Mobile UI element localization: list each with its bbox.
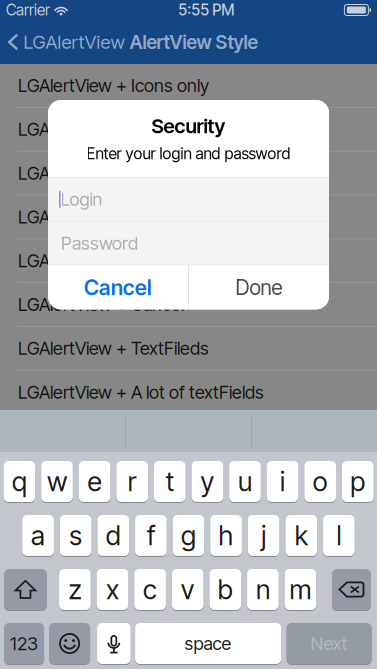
- button[interactable]: 123: [4, 622, 44, 664]
- button[interactable]: s: [60, 514, 91, 556]
- staticText: 123: [10, 632, 38, 655]
- staticText: LGAlertView + A lot of textFields: [18, 381, 264, 403]
- staticText: 5:55 PM: [178, 1, 234, 19]
- button[interactable]: t: [154, 460, 186, 502]
- button[interactable]: n: [247, 568, 279, 610]
- staticText: t: [166, 465, 174, 498]
- staticText: u: [238, 465, 252, 498]
- button[interactable]: Delete: [332, 568, 371, 610]
- staticText: n: [256, 573, 270, 606]
- staticText: Cancel: [84, 274, 152, 300]
- button[interactable]: a: [22, 514, 54, 556]
- staticText: k: [295, 519, 308, 552]
- button[interactable]: u: [229, 460, 261, 502]
- staticText: g: [181, 519, 196, 552]
- staticText: Password: [61, 232, 138, 254]
- button[interactable]: r: [116, 460, 148, 502]
- staticText: Done: [235, 275, 282, 300]
- staticText: h: [219, 519, 234, 552]
- button[interactable]: z: [59, 568, 91, 610]
- staticText: y: [200, 465, 214, 498]
- staticText: Security: [151, 114, 225, 138]
- button[interactable]: d: [97, 514, 129, 556]
- staticText: LGAlertView + Icons only: [18, 75, 209, 96]
- button[interactable]: Next: [287, 622, 372, 664]
- staticText: LGAlertView + Buttons: [18, 250, 193, 272]
- staticText: LGAlertView + Message: [18, 206, 203, 228]
- staticText: o: [313, 465, 328, 498]
- staticText: LGAlertView + Title + Message: [18, 162, 255, 184]
- staticText: b: [218, 573, 233, 606]
- button[interactable]: Emoji keyboard: [49, 622, 90, 664]
- button[interactable]: LGAlertView: [0, 20, 132, 64]
- staticText: s: [69, 519, 82, 552]
- button[interactable]: y: [192, 460, 223, 502]
- button[interactable]: LGAlertView + TextFileds: [0, 327, 377, 371]
- button[interactable]: e: [79, 460, 110, 502]
- staticText: w: [47, 465, 67, 498]
- staticText: LGAlertView + Title: [18, 118, 164, 140]
- button[interactable]: j: [248, 514, 279, 556]
- button[interactable]: k: [285, 514, 317, 556]
- button[interactable]: o: [304, 460, 336, 502]
- button[interactable]: Shift: [4, 568, 47, 610]
- staticText: i: [280, 465, 285, 498]
- staticText: c: [143, 573, 157, 606]
- staticText: p: [350, 465, 365, 498]
- staticText: r: [128, 465, 137, 498]
- button[interactable]: l: [323, 514, 355, 556]
- staticText: m: [289, 573, 311, 606]
- button[interactable]: g: [173, 514, 204, 556]
- button[interactable]: b: [209, 568, 241, 610]
- button[interactable]: LGAlertView + Icons only: [0, 64, 377, 108]
- button[interactable]: m: [285, 568, 316, 610]
- staticText: f: [147, 519, 155, 552]
- staticText: z: [68, 573, 81, 606]
- staticText: x: [106, 573, 119, 606]
- button[interactable]: LGAlertView + Title + Message: [0, 152, 377, 195]
- button[interactable]: w: [41, 460, 73, 502]
- staticText: LGAlertView + Cancel: [18, 294, 184, 315]
- staticText: Next: [311, 633, 348, 654]
- staticText: LGAlertView + TextFileds: [18, 337, 209, 359]
- button[interactable]: LGAlertView + A lot of textFields: [0, 371, 377, 414]
- button[interactable]: LGAlertView + Message: [0, 195, 377, 239]
- button[interactable]: LGAlertView + Cancel: [0, 283, 377, 327]
- staticText: Login: [61, 188, 103, 210]
- button[interactable]: x: [97, 568, 128, 610]
- button[interactable]: q: [4, 460, 35, 502]
- staticText: space: [185, 633, 232, 654]
- button[interactable]: v: [172, 568, 203, 610]
- button[interactable]: Dictation: [97, 622, 131, 664]
- staticText: d: [106, 519, 121, 552]
- staticText: AlertView Style: [129, 30, 257, 53]
- staticText: a: [31, 519, 45, 552]
- staticText: LGAlertView: [23, 31, 124, 53]
- staticText: e: [88, 465, 102, 498]
- button[interactable]: i: [267, 460, 298, 502]
- button[interactable]: LGAlertView + Buttons: [0, 239, 377, 283]
- button[interactable]: space: [135, 622, 281, 664]
- staticText: Enter your login and password: [86, 144, 290, 163]
- staticText: l: [336, 519, 341, 552]
- button[interactable]: Done: [189, 265, 329, 309]
- button[interactable]: f: [135, 514, 167, 556]
- button[interactable]: c: [134, 568, 166, 610]
- button[interactable]: LGAlertView + Title: [0, 108, 377, 152]
- button[interactable]: h: [210, 514, 242, 556]
- staticText: v: [181, 573, 195, 606]
- staticText: q: [12, 465, 27, 498]
- staticText: Carrier: [6, 1, 50, 19]
- button[interactable]: Cancel: [48, 265, 188, 309]
- button[interactable]: p: [342, 460, 374, 502]
- staticText: j: [261, 519, 266, 552]
